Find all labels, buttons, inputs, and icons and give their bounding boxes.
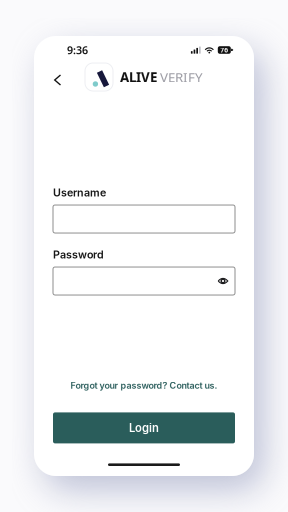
button[interactable]: Back bbox=[48, 64, 70, 90]
staticText: Password bbox=[53, 248, 104, 261]
staticText: 9:36 bbox=[67, 43, 88, 57]
staticText: Username bbox=[53, 186, 106, 199]
button[interactable]: Show password bbox=[213, 268, 233, 294]
staticText: Login bbox=[129, 421, 159, 435]
staticText: Forgot your password? Contact us. bbox=[70, 380, 217, 391]
staticText: 76 bbox=[220, 46, 228, 54]
button[interactable]: Login bbox=[53, 412, 235, 443]
button[interactable]: Forgot your password? Contact us. bbox=[34, 379, 254, 391]
staticText: ALIVE bbox=[120, 68, 157, 86]
staticText: VERIFY bbox=[160, 68, 203, 86]
